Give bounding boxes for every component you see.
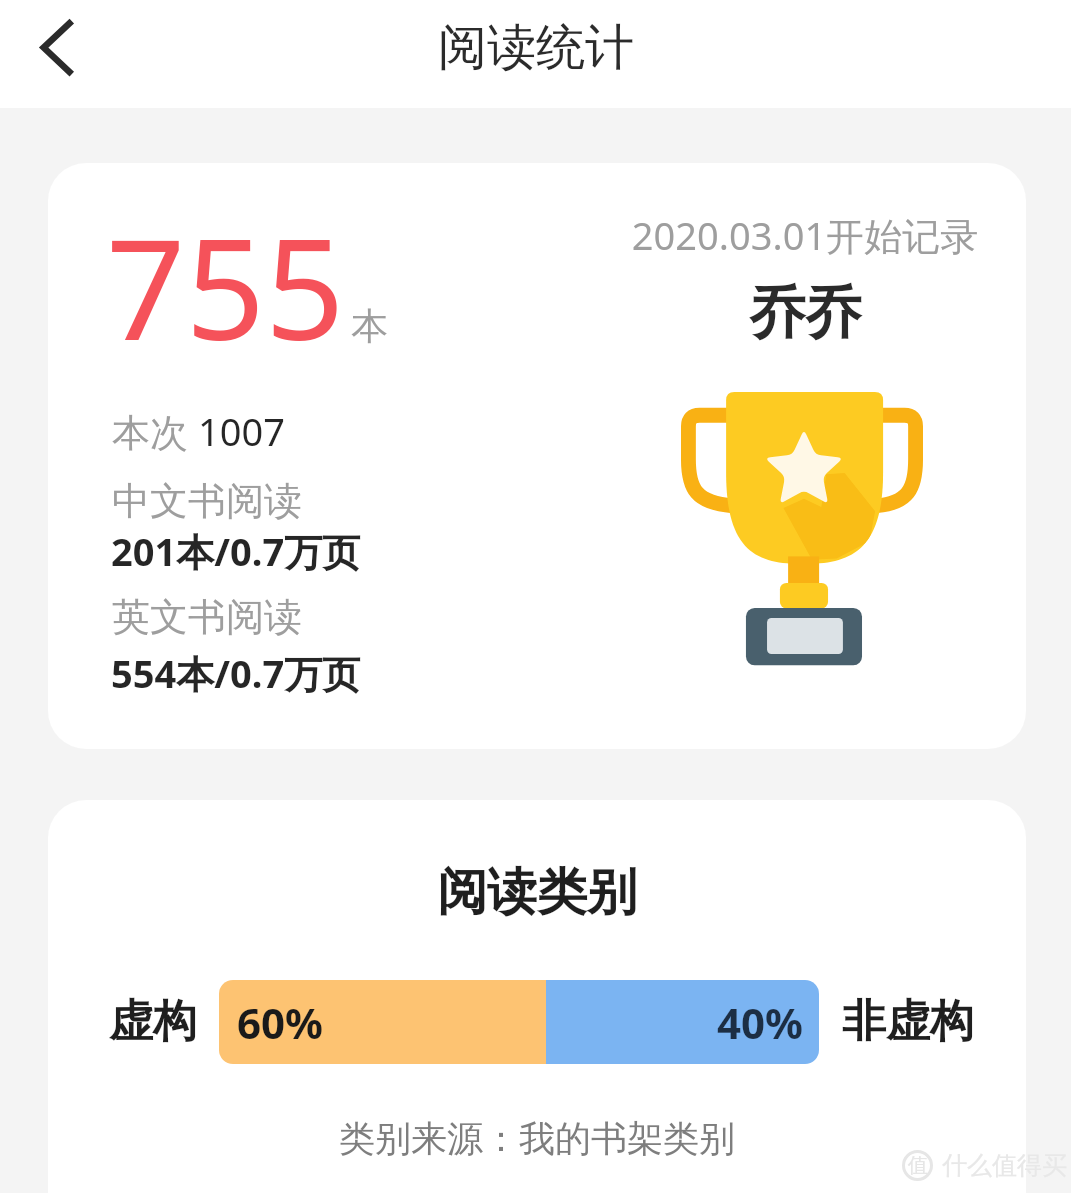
- staticText: 类别来源：我的书架类别: [48, 1116, 1026, 1161]
- staticText: 什么值得买: [942, 1150, 1067, 1181]
- staticText: 554本/0.7万页: [111, 647, 361, 699]
- button[interactable]: 755: [48, 163, 1026, 749]
- staticText: 英文书阅读: [112, 593, 302, 641]
- button[interactable]: 阅读类别: [48, 800, 1026, 1193]
- staticText: 阅读统计: [438, 17, 634, 79]
- staticText: 本: [351, 303, 388, 350]
- staticText: 40%: [717, 994, 803, 1051]
- staticText: 2020.03.01开始记录: [605, 209, 1005, 261]
- staticText: 60%: [237, 994, 323, 1051]
- staticText: 本次: [112, 405, 198, 457]
- staticText: 755: [106, 191, 345, 380]
- staticText: 非虚构: [842, 994, 974, 1049]
- staticText: 虚构: [109, 994, 197, 1049]
- staticText: 1007: [198, 405, 285, 457]
- staticText: 201本/0.7万页: [111, 525, 361, 577]
- staticText: 中文书阅读: [112, 477, 302, 525]
- staticText: 阅读类别: [48, 861, 1026, 924]
- staticText: 值: [908, 1153, 928, 1178]
- button[interactable]: Back: [26, 14, 110, 98]
- staticText: 乔乔: [605, 278, 1005, 349]
